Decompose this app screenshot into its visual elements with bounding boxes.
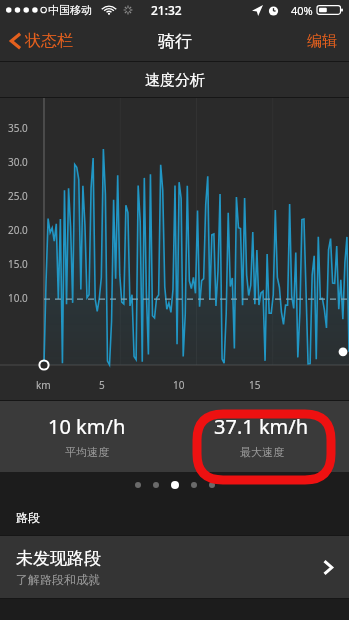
staticText: 30.0 <box>8 155 28 169</box>
staticText: 35.0 <box>8 121 28 135</box>
staticText: 10 km/h <box>48 413 126 440</box>
staticText: 37.1 km/h <box>214 413 309 440</box>
staticText: 最大速度 <box>240 445 284 459</box>
staticText: 10 <box>173 378 185 392</box>
staticText: 15.0 <box>8 257 28 271</box>
staticText: 20.0 <box>8 223 28 237</box>
staticText: 25.0 <box>8 189 28 203</box>
button[interactable]: 未发现路段 <box>0 536 349 598</box>
staticText: 15 <box>249 378 261 392</box>
staticText: 状态栏 <box>25 31 73 51</box>
staticText: 10.0 <box>8 291 28 305</box>
staticText: 中国移动 <box>48 3 92 17</box>
button[interactable]: 编辑 <box>295 24 349 59</box>
button[interactable]: 37.1 km/h <box>174 400 349 472</box>
staticText: 21:32 <box>151 2 182 18</box>
staticText: 路段 <box>16 510 40 525</box>
staticText: 未发现路段 <box>16 548 101 569</box>
staticText: km <box>36 378 51 392</box>
staticText: 40% <box>291 3 313 18</box>
other: 查看路段详情 <box>323 559 333 576</box>
staticText: 了解路段和成就 <box>16 572 100 587</box>
staticText: 5 <box>99 378 105 392</box>
staticText: 速度分析 <box>145 71 205 90</box>
button[interactable]: 10 km/h <box>0 400 174 472</box>
button[interactable]: 状态栏 <box>0 25 81 57</box>
staticText: 编辑 <box>307 32 337 51</box>
staticText: 骑行 <box>158 31 192 52</box>
staticText: 平均速度 <box>65 445 109 459</box>
